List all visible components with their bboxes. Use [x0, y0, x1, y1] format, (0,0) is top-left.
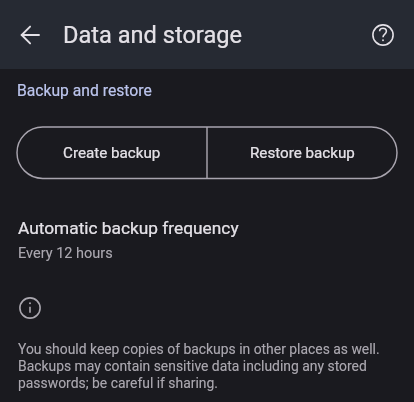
button[interactable]: Restore backup — [207, 127, 397, 178]
button[interactable]: Backup and restore — [17, 75, 152, 105]
staticText: Data and storage — [63, 21, 242, 49]
staticText: Automatic backup frequency — [18, 218, 239, 238]
staticText: Backup and restore — [17, 81, 152, 99]
button[interactable]: Navigate back — [6, 11, 54, 59]
staticText: Create backup — [63, 144, 161, 162]
button[interactable]: Create backup — [17, 127, 207, 178]
staticText: Restore backup — [250, 144, 355, 162]
button[interactable]: Automatic backup frequency — [0, 208, 414, 270]
staticText: You should keep copies of backups in oth… — [18, 341, 396, 391]
button[interactable]: Help — [359, 11, 407, 59]
staticText: Every 12 hours — [18, 245, 113, 262]
